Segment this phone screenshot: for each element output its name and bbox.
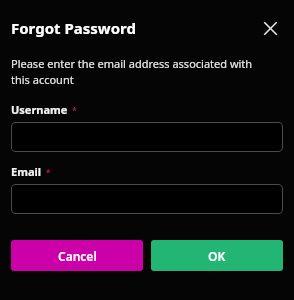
staticText: Forgot Password [11, 18, 136, 38]
staticText: OK [208, 248, 226, 264]
button[interactable]: Username field [11, 122, 283, 152]
staticText: Username * [11, 102, 77, 117]
staticText: Cancel [58, 248, 97, 264]
button[interactable]: Cancel [11, 240, 143, 271]
button[interactable]: OK [151, 240, 283, 271]
staticText: Please enter the email address associate… [11, 56, 264, 88]
button[interactable]: Email field [11, 184, 283, 214]
button[interactable]: Close [254, 12, 286, 44]
staticText: Email * [11, 164, 51, 179]
